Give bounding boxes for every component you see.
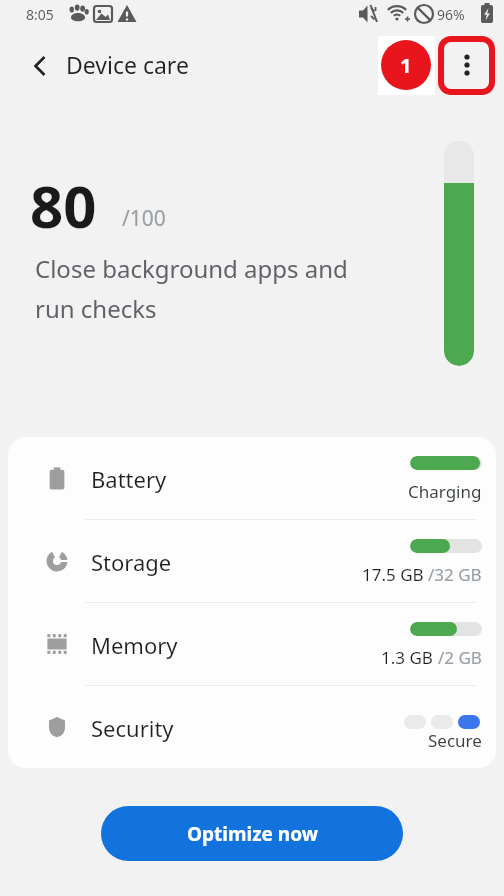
staticText: 1.3 GB (381, 646, 438, 669)
button[interactable]: Back (20, 46, 60, 86)
button[interactable]: Security (8, 686, 496, 768)
button[interactable]: Battery (8, 437, 496, 519)
staticText: Device care (66, 49, 189, 80)
staticText: run checks (35, 292, 157, 325)
staticText: 17.5 GB (362, 563, 428, 586)
staticText: 80 (30, 166, 97, 245)
staticText: Close background apps and (35, 252, 348, 285)
staticText: Secure (428, 729, 482, 752)
staticText: 8:05 (26, 5, 54, 24)
button[interactable]: Memory (8, 603, 496, 685)
staticText: 96% (437, 5, 465, 24)
staticText: Memory (91, 630, 178, 660)
staticText: Optimize now (187, 821, 318, 847)
staticText: Storage (91, 547, 172, 577)
staticText: Security (91, 713, 174, 743)
button[interactable]: Storage (8, 520, 496, 602)
staticText: Charging (408, 480, 482, 503)
staticText: /2 GB (438, 646, 482, 669)
button[interactable]: More options (444, 42, 490, 88)
staticText: 1 (400, 52, 412, 79)
staticText: Battery (91, 464, 167, 494)
button[interactable]: Optimize now (101, 806, 403, 861)
staticText: /32 GB (428, 563, 482, 586)
staticText: /100 (122, 204, 166, 233)
